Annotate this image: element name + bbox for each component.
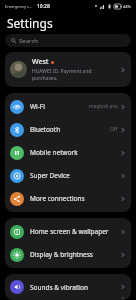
staticText: Display & brightness [30, 250, 120, 259]
staticText: Settings [7, 15, 53, 31]
staticText: Wi-Fi [30, 102, 89, 111]
staticText: HUAWEI ID, Payment and purchases, Cloud,… [32, 68, 117, 82]
staticText: Bluetooth [30, 125, 110, 134]
staticText: Mobile network [30, 148, 120, 157]
staticText: More connections [30, 194, 120, 203]
staticText: magicsk pro [89, 103, 118, 110]
staticText: Off [110, 126, 118, 133]
button[interactable]: Sounds & vibration [5, 276, 131, 298]
button[interactable]: Mobile network [5, 141, 131, 164]
button[interactable]: More connections [5, 187, 131, 210]
staticText: Emergency c… [5, 4, 33, 9]
button[interactable]: West [5, 52, 131, 87]
button[interactable]: Home screen & wallpaper [5, 220, 131, 243]
button[interactable]: Wi-Fi [5, 95, 131, 118]
button[interactable]: Display & brightness [5, 243, 131, 266]
staticText: 44% [123, 4, 131, 9]
button[interactable]: Search [5, 34, 131, 47]
staticText: Sounds & vibration [30, 283, 120, 292]
staticText: West [32, 57, 49, 67]
staticText: Home screen & wallpaper [30, 227, 120, 236]
staticText: Search [19, 37, 38, 45]
staticText: 10:28 [37, 3, 50, 10]
button[interactable]: Bluetooth [5, 118, 131, 141]
button[interactable]: Super Device [5, 164, 131, 187]
staticText: Super Device [30, 171, 120, 180]
